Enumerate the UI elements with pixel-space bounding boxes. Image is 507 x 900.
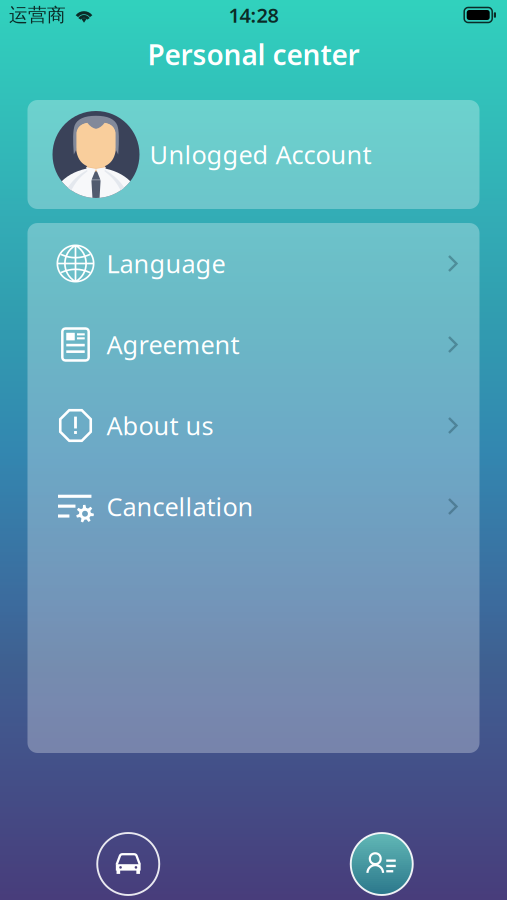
staticText: Unlogged Account bbox=[149, 138, 371, 171]
staticText: 运营商 bbox=[9, 3, 66, 26]
staticText: Agreement bbox=[106, 328, 239, 361]
button[interactable]: Cancellation bbox=[27, 466, 479, 547]
button[interactable]: Vehicles bbox=[85, 829, 171, 899]
staticText: Cancellation bbox=[106, 490, 253, 523]
staticText: Language bbox=[106, 247, 225, 280]
button[interactable]: Personal center bbox=[339, 829, 425, 899]
button[interactable]: Agreement bbox=[27, 304, 479, 385]
button[interactable]: Unlogged Account bbox=[27, 100, 479, 209]
staticText: About us bbox=[106, 409, 213, 442]
button[interactable]: Language bbox=[27, 223, 479, 304]
button[interactable]: About us bbox=[27, 385, 479, 466]
staticText: 14:28 bbox=[228, 2, 278, 28]
staticText: Personal center bbox=[147, 36, 359, 73]
